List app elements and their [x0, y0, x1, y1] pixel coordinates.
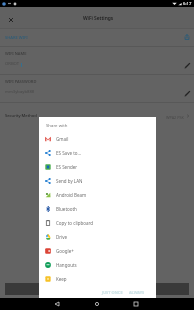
staticText: SHARE WIFI: [5, 35, 28, 41]
button[interactable]: Recents: [130, 298, 142, 310]
staticText: Keep: [56, 276, 67, 282]
staticText: Drive: [56, 234, 68, 240]
button[interactable]: ES Sender: [39, 160, 156, 174]
staticText: ES Save to...: [56, 150, 82, 156]
staticText: Bluetooth: [56, 206, 77, 212]
button[interactable]: ES Save to...: [39, 146, 156, 160]
staticText: WIFI NAME: [5, 51, 27, 56]
button[interactable]: WIFI NAME: [0, 47, 194, 74]
button[interactable]: JUST ONCE: [99, 288, 126, 297]
button[interactable]: Google+: [39, 244, 156, 258]
staticText: Android Beam: [56, 192, 87, 198]
staticText: ES Sender: [56, 164, 78, 170]
button[interactable]: Android Beam: [39, 188, 156, 202]
staticText: WIFI PASSWORD: [5, 79, 37, 84]
button[interactable]: Keep: [39, 272, 156, 286]
button[interactable]: Back: [51, 298, 63, 310]
button[interactable]: Home: [91, 298, 103, 310]
button[interactable]: [5, 283, 189, 295]
button[interactable]: Send by LAN: [39, 174, 156, 188]
staticText: Gmail: [56, 136, 69, 142]
button[interactable]: Security Method: [0, 103, 194, 130]
button[interactable]: Edit: [182, 88, 192, 98]
button[interactable]: ALWAYS: [126, 288, 148, 297]
staticText: 6:17: [183, 1, 192, 7]
button[interactable]: Gmail: [39, 132, 156, 146]
staticText: WiFi Settings: [83, 15, 114, 22]
button[interactable]: Hangouts: [39, 258, 156, 272]
staticText: ALWAYS: [129, 290, 145, 295]
button[interactable]: Share: [182, 32, 192, 42]
button[interactable]: SHARE WIFI: [0, 29, 194, 46]
staticText: Hangouts: [56, 262, 77, 268]
button[interactable]: Copy to clipboard: [39, 216, 156, 230]
staticText: mm3ybayb888: [5, 89, 35, 95]
staticText: WPA2 PSK: [166, 115, 184, 120]
button[interactable]: WIFI PASSWORD: [0, 75, 194, 102]
button[interactable]: Close: [5, 14, 16, 25]
button[interactable]: Drive: [39, 230, 156, 244]
staticText: Copy to clipboard: [56, 220, 94, 226]
staticText: Send by LAN: [56, 178, 83, 184]
staticText: ORBOT: [5, 61, 20, 67]
staticText: Security Method: [5, 113, 37, 119]
button[interactable]: Bluetooth: [39, 202, 156, 216]
staticText: Share with: [46, 122, 68, 128]
staticText: Google+: [56, 248, 74, 254]
staticText: JUST ONCE: [102, 290, 123, 295]
button[interactable]: Edit: [182, 60, 192, 70]
